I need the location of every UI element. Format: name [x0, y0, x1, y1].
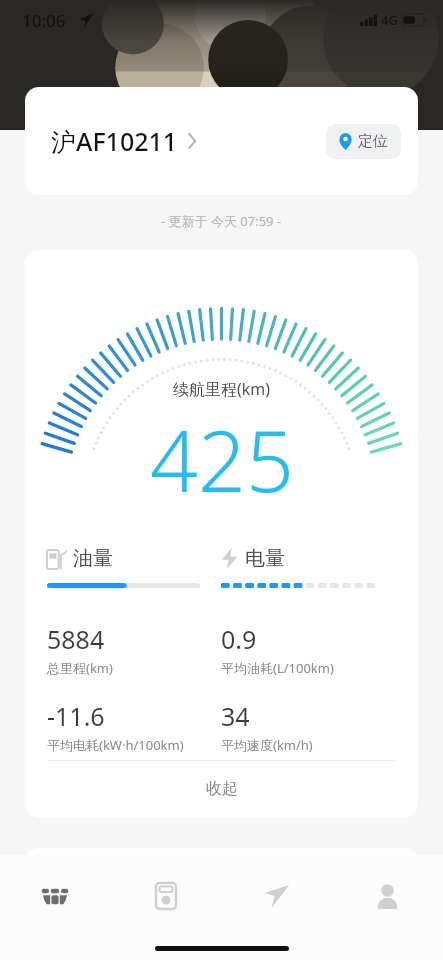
staticText: - 更新于 今天 07:59 - — [161, 212, 282, 230]
staticText: 10:06 — [22, 9, 66, 32]
staticText: 平均速度(km/h) — [221, 736, 313, 754]
staticText: 平均电耗(kW·h/100km) — [47, 736, 184, 754]
staticText: 4G — [381, 11, 398, 29]
button[interactable]: Vehicle — [0, 873, 110, 919]
staticText: 定位 — [358, 132, 388, 151]
staticText: 电量 — [245, 546, 285, 571]
staticText: 425 — [150, 402, 294, 516]
button[interactable]: Navigation — [221, 873, 332, 919]
staticText: 油量 — [73, 546, 113, 571]
staticText: 收起 — [206, 779, 238, 799]
button[interactable]: 沪AF10211 — [25, 87, 418, 195]
staticText: 沪AF10211 — [51, 124, 178, 158]
button[interactable]: 收起 — [25, 760, 418, 818]
staticText: 0.9 — [221, 622, 257, 656]
staticText: 34 — [221, 699, 250, 733]
button[interactable]: 定位 — [326, 124, 401, 159]
button[interactable]: Profile — [332, 873, 443, 919]
button[interactable]: Music — [110, 873, 221, 919]
staticText: -11.6 — [47, 699, 105, 733]
staticText: 平均油耗(L/100km) — [221, 659, 334, 677]
staticText: 总里程(km) — [47, 659, 113, 677]
staticText: 续航里程(km) — [173, 378, 271, 400]
staticText: 5884 — [47, 622, 105, 656]
